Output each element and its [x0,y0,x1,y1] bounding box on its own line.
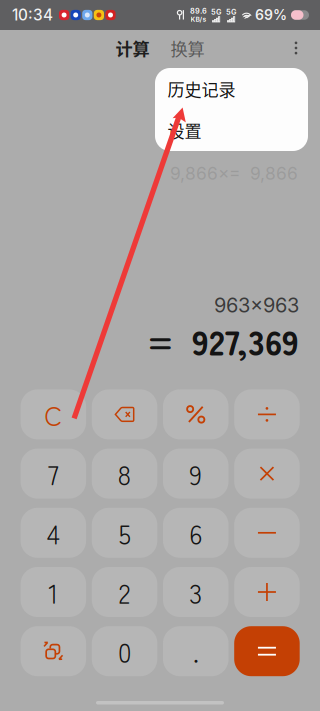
button[interactable]: More options [278,30,314,66]
staticText: 2 [119,573,131,611]
button[interactable]: 历史记录 [155,68,308,109]
button[interactable]: C [21,389,86,439]
staticText: 927,369 [192,315,299,365]
staticText: 963×963 [214,293,299,317]
button[interactable]: 5 [92,508,157,558]
button[interactable]: 3 [163,567,228,617]
button[interactable]: 2 [92,567,157,617]
staticText: 4 [47,513,60,552]
staticText: 计算 [116,35,150,60]
staticText: 7 [48,454,59,493]
staticText: 69% [255,6,287,23]
button[interactable]: 7 [21,449,86,499]
button[interactable]: 4 [21,508,86,558]
button[interactable] [234,508,300,558]
button[interactable] [234,449,300,499]
button[interactable]: 设置 [155,109,308,151]
button[interactable]: 9 [163,449,228,499]
button[interactable]: . [163,626,228,676]
staticText: . [193,632,199,670]
button[interactable] [234,567,300,617]
button[interactable] [92,389,157,439]
staticText: 8 [118,454,132,493]
staticText: C [44,395,62,434]
staticText: 5G [226,8,237,16]
staticText: 6 [189,513,202,552]
button[interactable] [234,626,300,676]
staticText: 设置 [167,118,201,143]
staticText: = [147,317,174,363]
staticText: 历史记录 [167,76,235,101]
button[interactable]: 8 [92,449,157,499]
button[interactable]: 1 [21,567,86,617]
button[interactable]: 0 [92,626,157,676]
staticText: 5G [211,8,222,16]
button[interactable]: 换算 [170,33,204,63]
staticText: 3 [189,573,202,611]
staticText: 9 [189,454,202,493]
staticText: 换算 [170,35,204,60]
staticText: 1 [48,573,58,611]
button[interactable] [163,389,228,439]
staticText: 89.6 [190,6,207,15]
button[interactable] [21,626,86,676]
staticText: 10:34 [12,6,53,24]
staticText: 5 [119,513,131,552]
button[interactable]: 6 [163,508,228,558]
staticText: KB/s [190,15,206,23]
button[interactable] [234,389,300,439]
button[interactable]: 计算 [116,33,150,63]
staticText: 0 [118,632,131,670]
staticText: 9,866×= 9,866 [170,163,298,184]
